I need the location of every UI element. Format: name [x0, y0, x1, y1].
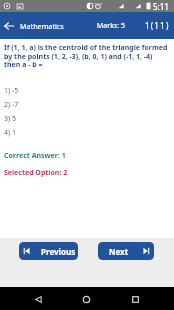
- button[interactable]: Next: [98, 242, 154, 260]
- staticText: Previous: [41, 246, 76, 257]
- button[interactable]: 1) -5: [4, 84, 170, 98]
- staticText: Mathematics: [20, 21, 64, 31]
- staticText: 1) -5: [4, 86, 19, 96]
- staticText: If (1, 1, a) is the centroid of the tria…: [4, 43, 170, 69]
- button[interactable]: 4) 1: [4, 126, 170, 140]
- button[interactable]: Previous: [19, 242, 78, 260]
- staticText: 1(11): [145, 20, 170, 31]
- staticText: Marks: 5: [97, 21, 125, 31]
- button[interactable]: Recents: [125, 289, 145, 309]
- staticText: 3) 5: [4, 114, 16, 124]
- button[interactable]: Back: [0, 17, 17, 34]
- button[interactable]: 3) 5: [4, 112, 170, 126]
- staticText: 2) -7: [4, 100, 19, 110]
- button[interactable]: Back: [28, 289, 48, 309]
- staticText: Selected Option: 2: [4, 168, 68, 178]
- button[interactable]: 2) -7: [4, 98, 170, 112]
- button[interactable]: Home: [76, 289, 96, 309]
- staticText: Correct Answer: 1: [4, 151, 66, 161]
- staticText: 4) 1: [4, 128, 16, 138]
- staticText: Next: [109, 246, 129, 257]
- staticText: 5:11: [153, 1, 169, 12]
